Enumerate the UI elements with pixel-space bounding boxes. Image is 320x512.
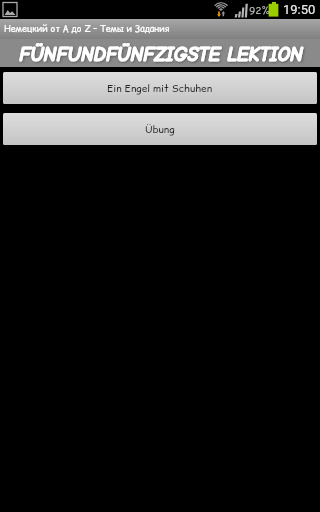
button[interactable]: Ein Engel mit Schuhen [3,72,317,104]
staticText: FÜNFUNDFÜNFZIGSTE LEKTION [19,43,303,66]
button[interactable]: Übung [3,113,317,145]
staticText: Немецкий от А до Z – Темы и Задания [4,23,170,35]
staticText: Ein Engel mit Schuhen [107,81,213,95]
staticText: 19:50 [283,2,316,17]
staticText: FÜNFUNDFÜNFZIGSTE LEKTION [19,43,303,66]
staticText: Übung [145,122,175,136]
staticText: 92% [249,3,270,17]
